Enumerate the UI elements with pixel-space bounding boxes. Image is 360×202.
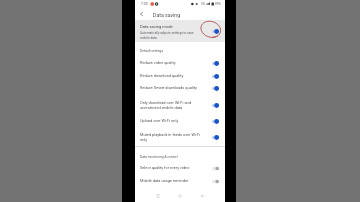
- button[interactable]: Mobile data usage reminder: [135, 178, 225, 187]
- staticText: Muted playback in feeds over Wi-Fi only: [140, 132, 206, 142]
- button[interactable]: [212, 74, 219, 79]
- staticText: Reduce download quality: [140, 73, 206, 78]
- staticText: Reduce video quality: [140, 60, 206, 65]
- staticText: Data saving: [153, 12, 181, 18]
- button[interactable]: Reduce download quality: [135, 73, 225, 82]
- staticText: Upload over Wi-Fi only: [140, 118, 206, 123]
- staticText: 7:00: [141, 2, 148, 6]
- staticText: Select quality for every video: [140, 165, 206, 170]
- button[interactable]: Upload over Wi-Fi only: [135, 118, 225, 127]
- button[interactable]: [212, 29, 219, 34]
- button[interactable]: Recent apps: [156, 194, 160, 198]
- button[interactable]: [212, 119, 219, 124]
- button[interactable]: [212, 86, 219, 91]
- button[interactable]: Select quality for every video: [135, 165, 225, 174]
- staticText: 5G: [201, 2, 205, 6]
- staticText: Mobile data usage reminder: [140, 178, 206, 183]
- button[interactable]: Back: [200, 194, 204, 198]
- staticText: Default settings: [140, 49, 164, 53]
- button[interactable]: Reduce video quality: [135, 60, 225, 69]
- button[interactable]: [212, 135, 219, 140]
- button[interactable]: [212, 179, 219, 184]
- button[interactable]: [212, 166, 219, 171]
- button[interactable]: [212, 61, 219, 66]
- button[interactable]: Muted playback in feeds over Wi-Fi only: [135, 132, 225, 144]
- button[interactable]: Navigate up: [139, 11, 145, 17]
- staticText: Reduce Smart downloads quality: [140, 85, 206, 90]
- staticText: 89%: [215, 2, 221, 6]
- staticText: Data monitoring & control: [140, 155, 178, 159]
- button[interactable]: Home: [178, 194, 182, 198]
- button[interactable]: Reduce Smart downloads quality: [135, 85, 225, 94]
- button[interactable]: Data saving mode: [135, 20, 225, 42]
- staticText: Data saving mode: [140, 24, 173, 29]
- staticText: Automatically adjusts settings to save m…: [140, 31, 197, 40]
- button[interactable]: [212, 103, 219, 108]
- button[interactable]: Only download over Wi-Fi and unrestricte…: [135, 100, 225, 112]
- staticText: Only download over Wi-Fi and unrestricte…: [140, 100, 206, 110]
